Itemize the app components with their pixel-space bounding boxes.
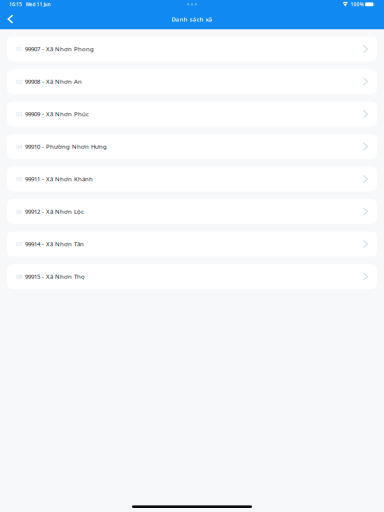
staticText: 99911 - Xã Nhơn Khánh	[25, 175, 93, 183]
staticText: 99908 - Xã Nhơn An	[25, 77, 82, 85]
staticText: 05	[16, 175, 22, 183]
staticText: 99912 - Xã Nhơn Lộc	[25, 207, 84, 215]
staticText: 99907 - Xã Nhơn Phong	[25, 45, 94, 53]
button[interactable]: 05	[7, 166, 377, 191]
staticText: Wed 11 Jun	[25, 1, 50, 7]
staticText: 01	[16, 45, 22, 53]
button[interactable]: 04	[7, 134, 377, 159]
staticText: 99915 - Xã Nhơn Thọ	[25, 272, 85, 280]
staticText: 100%	[350, 1, 363, 7]
staticText: 99914 - Xã Nhơn Tân	[25, 240, 84, 248]
button[interactable]: 07	[7, 231, 377, 256]
button[interactable]: 01	[7, 36, 377, 61]
staticText: 04	[16, 143, 22, 150]
button[interactable]: 08	[7, 264, 377, 289]
staticText: 99909 - Xã Nhơn Phúc	[25, 110, 89, 118]
staticText: 06	[16, 208, 22, 215]
staticText: 16:15	[9, 1, 22, 8]
staticText: 99910 - Phường Nhơn Hưng	[25, 142, 107, 150]
staticText: 07	[16, 240, 22, 248]
button[interactable]: 03	[7, 101, 377, 126]
staticText: 08	[16, 273, 22, 280]
button[interactable]: 06	[7, 199, 377, 224]
button[interactable]: 02	[7, 69, 377, 94]
staticText: Danh sách xã	[171, 15, 212, 23]
staticText: 02	[16, 78, 22, 85]
staticText: 03	[16, 110, 22, 118]
button[interactable]: Back	[0, 9, 22, 29]
